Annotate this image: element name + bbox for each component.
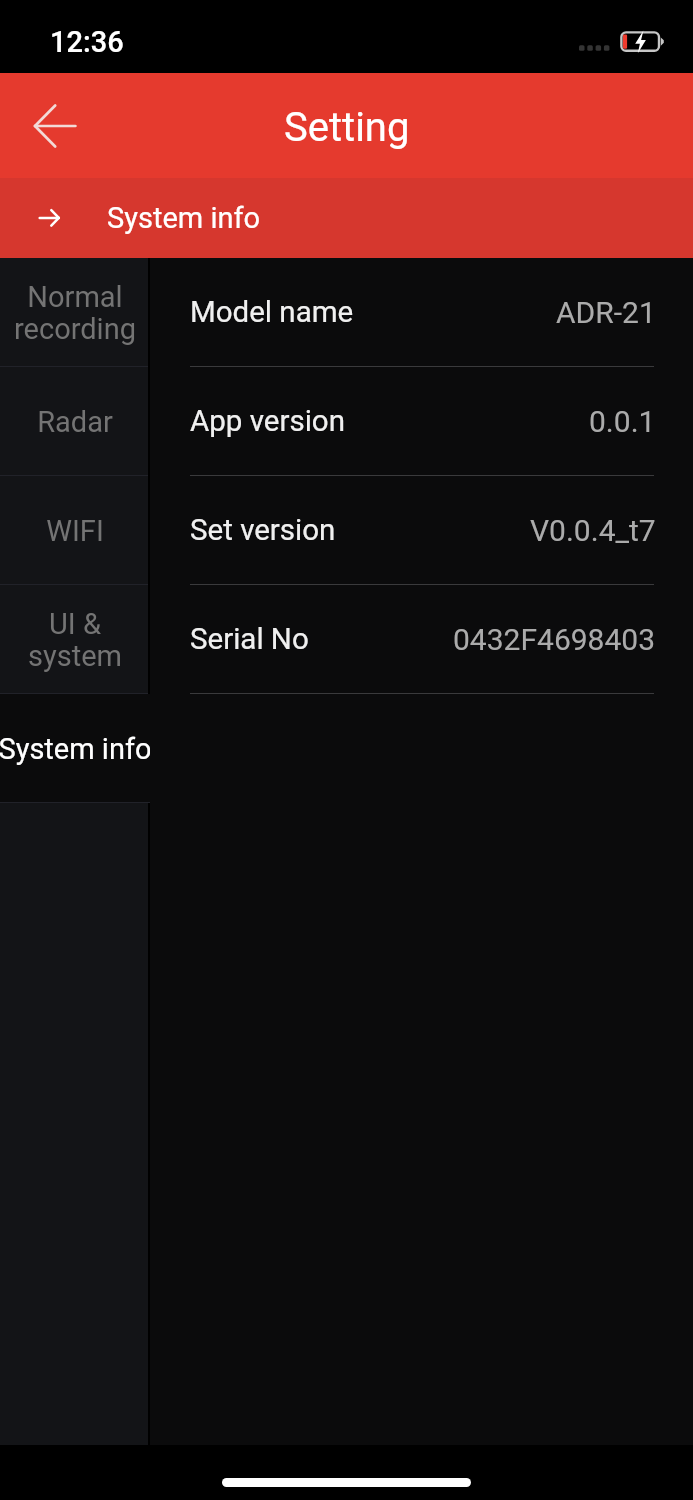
button[interactable]: System info: [0, 694, 150, 803]
staticText: Normal recording: [14, 280, 136, 346]
staticText: 12:36: [50, 25, 124, 59]
button[interactable]: Normal recording: [0, 258, 150, 367]
staticText: System info: [107, 201, 261, 235]
staticText: Serial No: [190, 622, 309, 657]
staticText: UI & system: [28, 607, 122, 673]
staticText: Radar: [37, 405, 113, 439]
button[interactable]: Radar: [0, 367, 150, 476]
staticText: App version: [190, 404, 345, 439]
button[interactable]: Back: [0, 73, 104, 178]
staticText: System info: [0, 732, 275, 766]
button[interactable]: Model name: [150, 258, 693, 367]
button[interactable]: System info: [0, 178, 693, 258]
staticText: WIFI: [46, 514, 104, 548]
staticText: V0.0.4_t7: [530, 513, 656, 548]
staticText: 0.0.1: [589, 404, 656, 439]
button[interactable]: WIFI: [0, 476, 150, 585]
button[interactable]: Set version: [150, 476, 693, 585]
staticText: Set version: [190, 513, 336, 548]
button[interactable]: Serial No: [150, 585, 693, 694]
button[interactable]: App version: [150, 367, 693, 476]
staticText: 0432F4698403: [453, 622, 656, 657]
button[interactable]: UI & system: [0, 585, 150, 694]
staticText: Setting: [284, 104, 410, 151]
staticText: ADR-21: [556, 295, 656, 330]
staticText: Model name: [190, 295, 354, 330]
